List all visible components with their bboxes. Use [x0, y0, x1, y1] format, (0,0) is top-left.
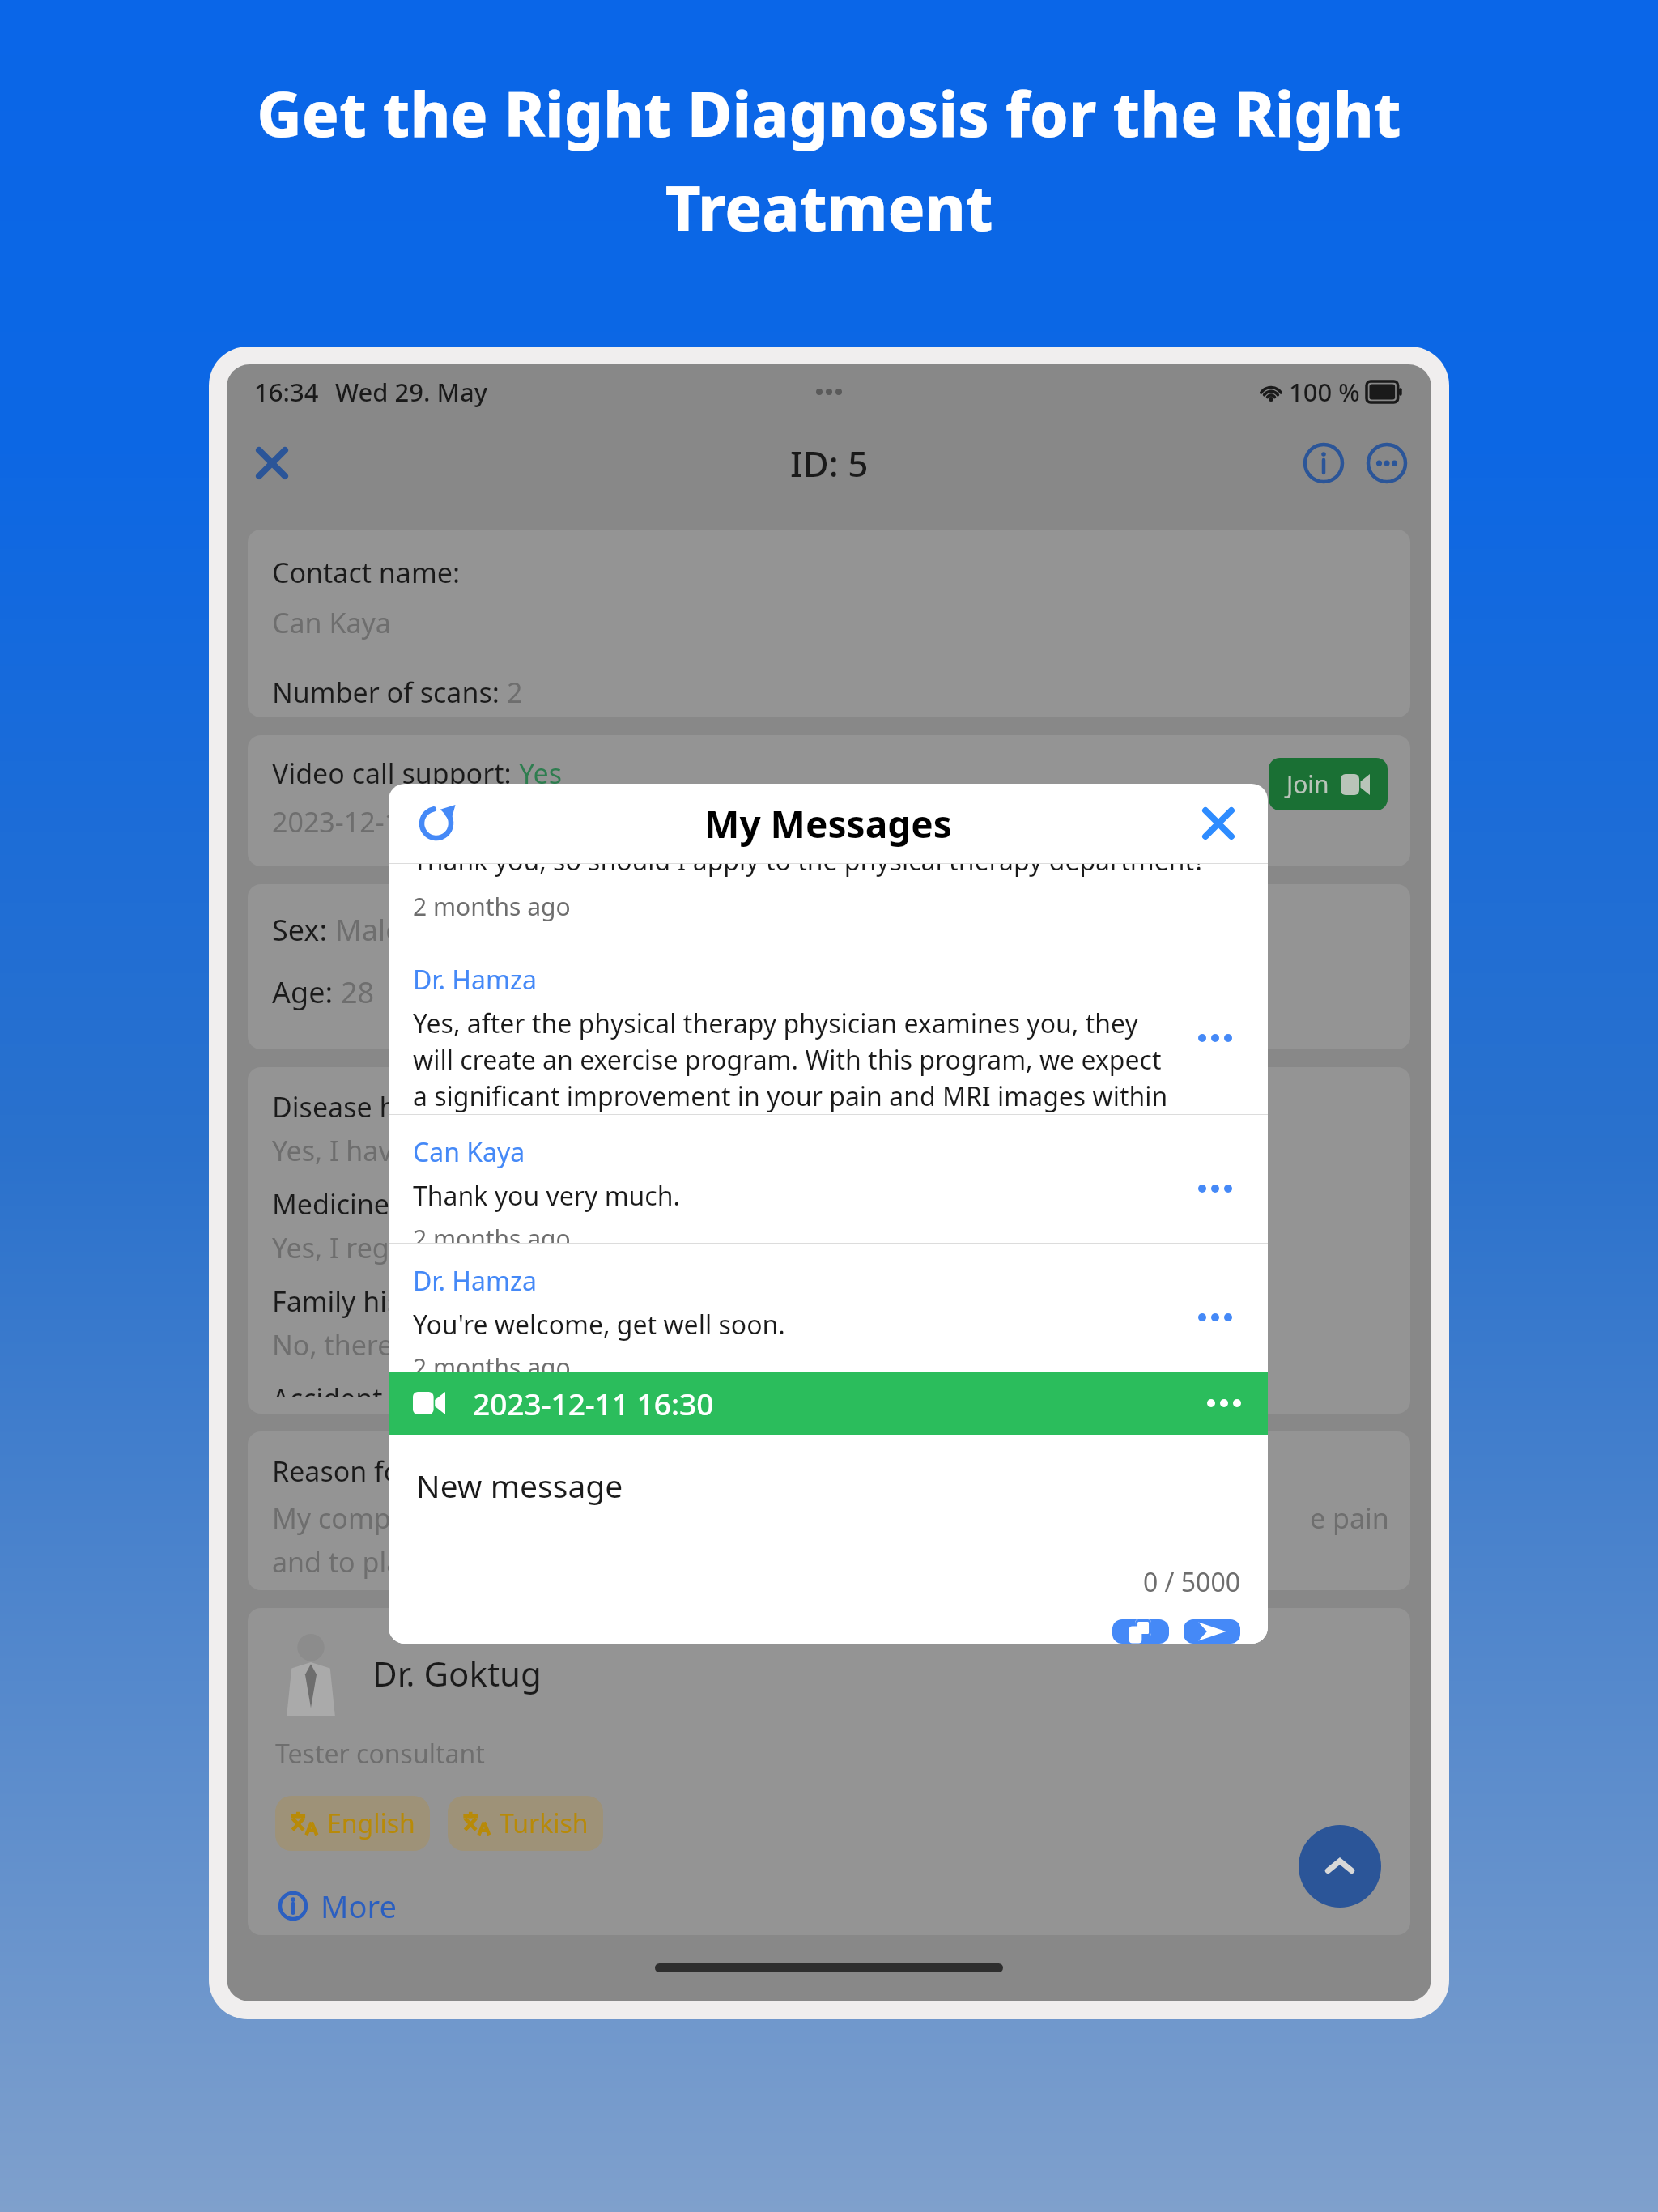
staticText: 100 % — [1289, 375, 1360, 409]
staticText: My compla — [272, 1499, 414, 1537]
button[interactable]: Dr. Hamza — [389, 942, 1268, 1114]
staticText: 16:34 — [254, 375, 319, 409]
staticText: English — [327, 1806, 415, 1841]
staticText: Medicine h — [272, 1185, 414, 1223]
button[interactable]: Join — [1269, 758, 1388, 810]
staticText: Dr. Goktug — [372, 1650, 542, 1696]
staticText: Get the Right Diagnosis for the Right Tr… — [113, 71, 1545, 249]
button[interactable]: More options — [1362, 438, 1412, 488]
staticText: 28 — [341, 972, 375, 1012]
staticText: Yes — [519, 755, 563, 792]
button[interactable]: Turkish — [448, 1796, 603, 1851]
staticText: Family hist — [272, 1283, 410, 1320]
staticText: 2 months ago — [413, 890, 571, 921]
button[interactable]: Can Kaya — [389, 1115, 1268, 1243]
staticText: Thank you very much. — [413, 1178, 681, 1214]
staticText: Dr. Hamza — [413, 962, 537, 998]
button[interactable]: Refresh — [411, 798, 461, 849]
staticText: Dr. Hamza — [413, 1263, 537, 1299]
staticText: Age: — [272, 972, 341, 1012]
staticText: Contact name: — [272, 554, 461, 591]
staticText: 2023-12-11 16:30 — [272, 803, 494, 840]
staticText: 2 — [507, 674, 523, 711]
staticText: Reason fo — [272, 1453, 401, 1490]
staticText: New message — [416, 1464, 623, 1507]
staticText: Join — [1286, 768, 1329, 801]
staticText: Male — [335, 910, 402, 950]
staticText: Wed 29. May — [335, 375, 488, 409]
staticText: 2 months ago — [413, 1351, 571, 1372]
staticText: My Messages — [704, 798, 952, 849]
staticText: Yes, I regu — [272, 1229, 406, 1266]
staticText: Thank you, so should I apply to the phys… — [413, 864, 1206, 878]
staticText: 2023-12-11 16:30 — [473, 1383, 714, 1423]
button[interactable]: Scroll to top — [1299, 1825, 1381, 1908]
staticText: Turkish — [500, 1806, 589, 1841]
button[interactable]: Attach file — [1112, 1619, 1169, 1644]
staticText: More — [321, 1885, 397, 1927]
button[interactable]: Dr. Hamza — [389, 1244, 1268, 1372]
staticText: Can Kaya — [272, 604, 391, 641]
button[interactable]: English — [275, 1796, 430, 1851]
staticText: Can Kaya — [413, 1134, 525, 1170]
button[interactable]: More — [275, 1882, 400, 1930]
button[interactable]: Close dialog — [1193, 798, 1243, 849]
staticText: Yes, after the physical therapy physicia… — [413, 1006, 1182, 1114]
staticText: Yes, I have — [272, 1132, 408, 1169]
staticText: e pain — [1310, 1499, 1389, 1537]
staticText: Number of scans: — [272, 674, 507, 711]
staticText: Sex: — [272, 910, 335, 950]
staticText: 0 / 5000 — [416, 1564, 1240, 1600]
staticText: Accident h — [272, 1380, 407, 1397]
staticText: Disease hi — [272, 1088, 404, 1125]
staticText: No, there i — [272, 1326, 407, 1363]
button[interactable]: 2023-12-11 16:30 — [389, 1372, 1268, 1435]
button[interactable]: Info — [1299, 438, 1349, 488]
staticText: and to pla — [272, 1543, 402, 1580]
staticText: ID: 5 — [790, 439, 869, 487]
button[interactable]: Send — [1184, 1619, 1240, 1644]
staticText: Video call support: — [272, 755, 519, 792]
staticText: 2 months ago — [413, 1222, 571, 1243]
button[interactable]: Close — [246, 437, 298, 489]
staticText: Tester consultant — [275, 1736, 485, 1772]
staticText: You're welcome, get well soon. — [413, 1307, 785, 1342]
